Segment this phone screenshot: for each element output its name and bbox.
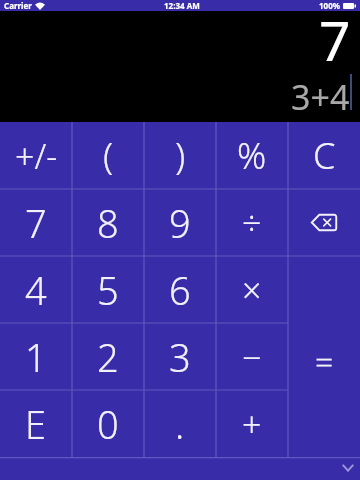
staticText: Carrier xyxy=(4,0,32,11)
button[interactable]: 2 xyxy=(72,323,144,390)
button[interactable]: C xyxy=(288,122,360,189)
staticText: ( xyxy=(103,129,114,179)
staticText: 3 xyxy=(169,331,191,383)
button[interactable]: − xyxy=(216,323,288,390)
staticText: 9 xyxy=(169,197,191,249)
button[interactable]: × xyxy=(216,256,288,323)
button[interactable] xyxy=(288,189,360,256)
button[interactable]: E xyxy=(0,390,72,457)
staticText: . xyxy=(175,398,185,450)
staticText: − xyxy=(242,334,262,380)
button[interactable]: . xyxy=(144,390,216,457)
button[interactable]: 8 xyxy=(72,189,144,256)
staticText: ÷ xyxy=(242,200,262,246)
button[interactable]: 4 xyxy=(0,256,72,323)
button[interactable] xyxy=(0,457,360,480)
staticText: 7 xyxy=(319,2,351,77)
button[interactable]: +/- xyxy=(0,122,72,189)
button[interactable]: 6 xyxy=(144,256,216,323)
staticText: 3+4 xyxy=(291,74,350,110)
staticText: ) xyxy=(175,129,186,179)
staticText: E xyxy=(25,398,47,450)
staticText: 8 xyxy=(97,197,119,249)
staticText: 1 xyxy=(25,331,47,383)
staticText: 12:34 AM xyxy=(164,0,200,11)
staticText: 2 xyxy=(97,331,119,383)
staticText: 6 xyxy=(169,264,191,316)
button[interactable]: 5 xyxy=(72,256,144,323)
button[interactable]: ) xyxy=(144,122,216,189)
staticText: + xyxy=(242,401,262,447)
staticText: = xyxy=(315,339,334,383)
button[interactable]: + xyxy=(216,390,288,457)
button[interactable]: 3 xyxy=(144,323,216,390)
staticText: 7 xyxy=(25,197,47,249)
button[interactable]: % xyxy=(216,122,288,189)
staticText: C xyxy=(313,131,336,180)
button[interactable]: ÷ xyxy=(216,189,288,256)
staticText: % xyxy=(237,131,267,180)
button[interactable]: ( xyxy=(72,122,144,189)
staticText: 5 xyxy=(97,264,119,316)
staticText: 4 xyxy=(25,264,47,316)
button[interactable]: 9 xyxy=(144,189,216,256)
button[interactable]: = xyxy=(288,256,360,457)
button[interactable]: 7 xyxy=(0,189,72,256)
staticText: 0 xyxy=(97,398,119,450)
staticText: × xyxy=(242,267,262,313)
staticText: +/- xyxy=(15,133,58,179)
button[interactable]: 0 xyxy=(72,390,144,457)
button[interactable]: 1 xyxy=(0,323,72,390)
staticText: 100% xyxy=(319,0,340,11)
